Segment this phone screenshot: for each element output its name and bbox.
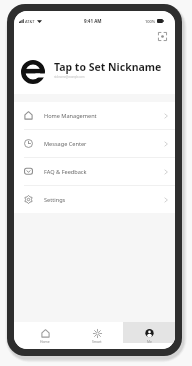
staticText: Home Management — [44, 112, 97, 120]
button[interactable]: Smart — [71, 322, 123, 343]
button[interactable]: Message Center — [14, 130, 175, 157]
button[interactable]: Settings — [14, 186, 175, 213]
staticText: 100% — [145, 19, 156, 24]
staticText: nickname@example.com — [54, 75, 85, 79]
staticText: Me — [147, 339, 152, 344]
button[interactable]: Me — [123, 322, 175, 343]
button[interactable]: Scan QR code — [158, 32, 167, 41]
staticText: Smart — [92, 339, 102, 344]
button[interactable]: Home Management — [14, 102, 175, 129]
staticText: Home — [40, 339, 50, 344]
staticText: AT&T — [25, 19, 35, 24]
staticText: Tap to Set Nickname — [54, 60, 162, 74]
button[interactable]: Home — [19, 322, 71, 343]
staticText: Message Center — [44, 140, 87, 148]
button[interactable]: FAQ & Feedback — [14, 158, 175, 185]
staticText: FAQ & Feedback — [44, 168, 87, 176]
staticText: Settings — [44, 196, 66, 204]
button[interactable]: Tap to Set Nickname — [14, 60, 175, 94]
staticText: 9:41 AM — [84, 18, 102, 24]
